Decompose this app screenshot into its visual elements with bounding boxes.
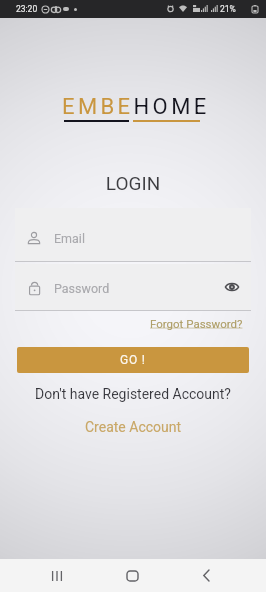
button[interactable]: Create Account xyxy=(81,417,186,437)
button[interactable]: Email xyxy=(15,208,251,261)
staticText: Don't have Registered Account? xyxy=(0,386,266,402)
staticText: Email xyxy=(54,231,85,246)
staticText: Password xyxy=(54,281,110,296)
button[interactable]: Password xyxy=(15,264,251,310)
staticText: LOGIN xyxy=(0,172,266,194)
staticText: EMBEHOME xyxy=(62,94,210,120)
staticText: 21% xyxy=(220,4,236,14)
staticText: GO ! xyxy=(120,353,146,367)
staticText: 23:20 xyxy=(16,4,38,14)
staticText: Create Account xyxy=(85,419,182,435)
button[interactable]: Recents xyxy=(41,559,73,592)
button[interactable]: Back xyxy=(190,559,222,592)
button[interactable]: GO ! xyxy=(17,347,249,373)
button[interactable]: Forgot Password? xyxy=(146,314,247,333)
button[interactable]: Show password xyxy=(221,276,243,298)
staticText: Forgot Password? xyxy=(150,317,243,330)
button[interactable]: Home xyxy=(116,559,148,592)
